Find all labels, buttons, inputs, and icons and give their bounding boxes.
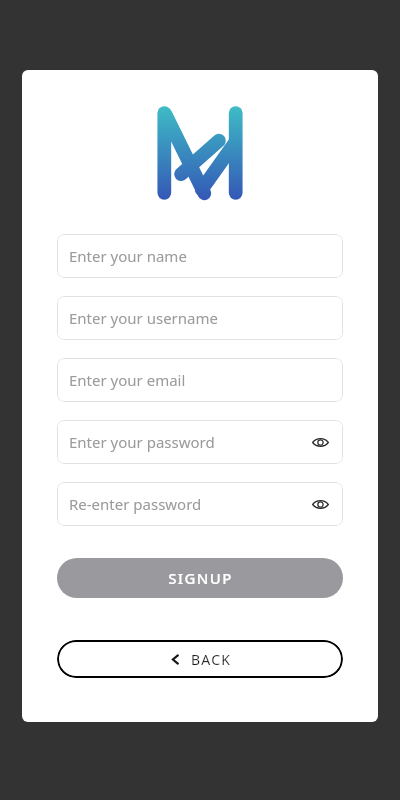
- button[interactable]: Show password: [309, 431, 331, 453]
- staticText: Enter your name: [69, 246, 187, 266]
- staticText: Re-enter password: [69, 494, 202, 514]
- button[interactable]: Enter your name: [57, 234, 343, 278]
- button[interactable]: Show password: [309, 493, 331, 515]
- staticText: SIGNUP: [168, 568, 233, 588]
- staticText: Enter your password: [69, 432, 215, 452]
- button[interactable]: Enter your email: [57, 358, 343, 402]
- staticText: Enter your username: [69, 308, 218, 328]
- button[interactable]: Enter your username: [57, 296, 343, 340]
- button[interactable]: Re-enter password: [57, 482, 343, 526]
- button[interactable]: BACK: [57, 640, 343, 678]
- button[interactable]: SIGNUP: [57, 558, 343, 598]
- staticText: Enter your email: [69, 370, 186, 390]
- staticText: BACK: [191, 650, 232, 669]
- button[interactable]: Enter your password: [57, 420, 343, 464]
